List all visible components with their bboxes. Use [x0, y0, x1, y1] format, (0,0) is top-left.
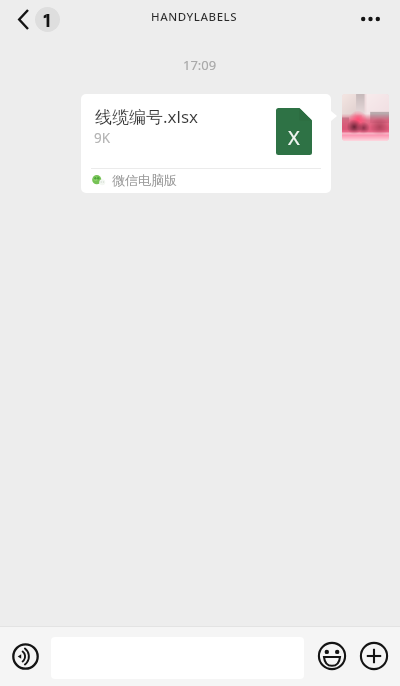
staticText: 线缆编号.xlsx — [95, 105, 199, 128]
button[interactable]: More functions — [360, 642, 388, 670]
button[interactable]: Voice input — [12, 643, 39, 670]
button[interactable]: Emoji — [318, 642, 346, 670]
button[interactable]: Contact avatar — [342, 94, 389, 141]
button[interactable]: Back — [0, 3, 68, 36]
staticText: X — [288, 124, 300, 151]
staticText: 17:09 — [183, 56, 217, 74]
staticText: HANDYLABELS — [151, 9, 238, 25]
button[interactable]: More options — [347, 6, 400, 32]
staticText: 微信电脑版 — [112, 172, 177, 188]
button[interactable]: 线缆编号.xlsx — [81, 94, 331, 193]
staticText: 9K — [94, 129, 111, 147]
